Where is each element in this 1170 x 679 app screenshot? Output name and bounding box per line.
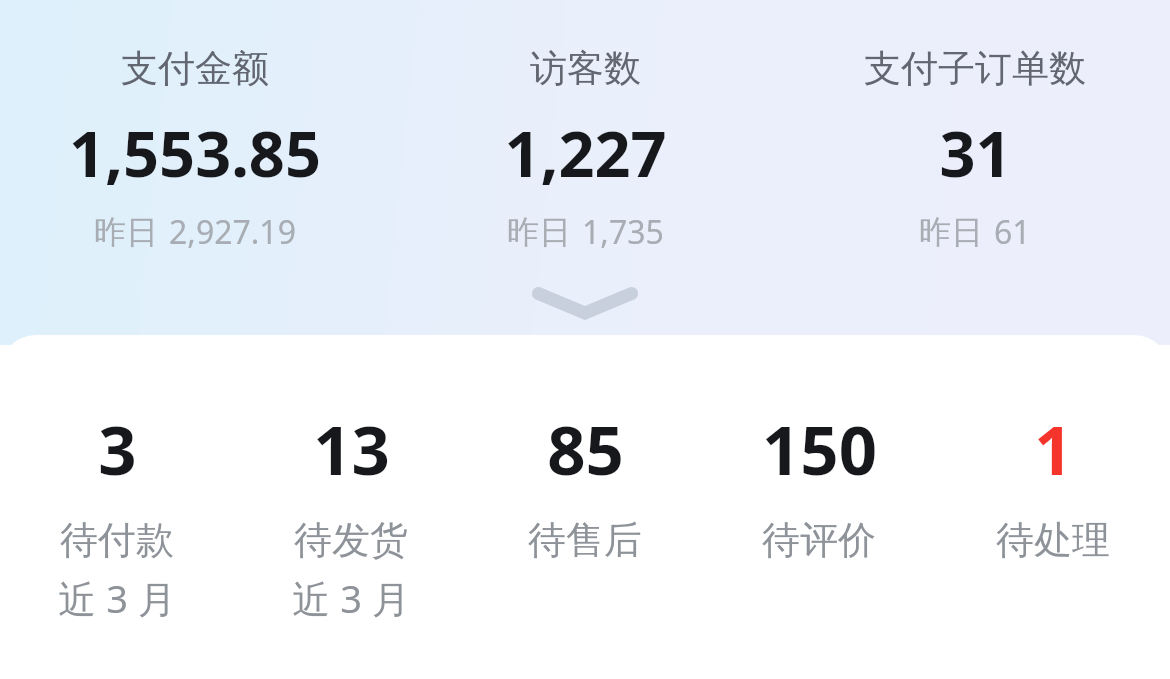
staticText: 2,927.19: [169, 210, 296, 254]
button[interactable]: 支付金额: [0, 45, 390, 254]
button[interactable]: 85: [468, 403, 702, 564]
staticText: 1,227: [504, 110, 667, 196]
staticText: 待付款: [60, 516, 174, 564]
staticText: 近 3 月: [292, 572, 410, 624]
staticText: 31: [939, 110, 1012, 196]
button[interactable]: 支付子订单数: [780, 45, 1170, 254]
staticText: 待处理: [996, 516, 1110, 564]
staticText: 昨日: [919, 212, 983, 252]
button[interactable]: 1: [936, 403, 1170, 564]
staticText: 150: [762, 403, 877, 494]
staticText: 近 3 月: [58, 572, 176, 624]
button[interactable]: 150: [702, 403, 936, 564]
staticText: 访客数: [530, 45, 641, 92]
button[interactable]: 13: [234, 403, 468, 624]
staticText: 待售后: [528, 516, 642, 564]
staticText: 1,735: [582, 210, 664, 254]
staticText: 昨日: [507, 212, 571, 252]
button[interactable]: 访客数: [390, 45, 780, 254]
staticText: 3: [98, 403, 137, 494]
staticText: 1,553.85: [69, 110, 321, 196]
staticText: 待评价: [762, 516, 876, 564]
staticText: 85: [547, 403, 624, 494]
button[interactable]: Expand: [525, 276, 645, 328]
staticText: 支付金额: [121, 45, 269, 92]
staticText: 支付子订单数: [864, 45, 1086, 92]
staticText: 61: [994, 210, 1031, 254]
staticText: 13: [313, 403, 390, 494]
button[interactable]: 3: [0, 403, 234, 624]
staticText: 待发货: [294, 516, 408, 564]
staticText: 1: [1034, 403, 1073, 494]
staticText: 昨日: [94, 212, 158, 252]
